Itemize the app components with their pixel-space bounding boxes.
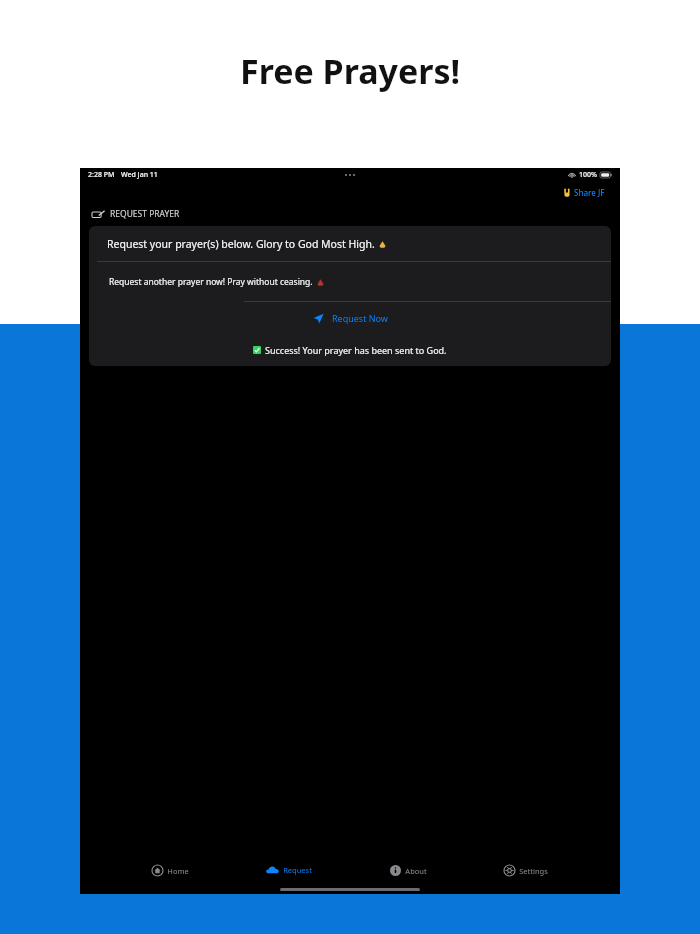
button[interactable]: Share JF [560,185,608,200]
button[interactable]: Settings [498,862,554,879]
staticText: Success! Your prayer has been sent to Go… [265,344,447,356]
button[interactable]: Home [146,862,195,879]
staticText: Request your prayer(s) below. Glory to G… [107,237,375,251]
staticText: Free Prayers! [240,48,461,94]
staticText: About [405,866,427,876]
staticText: 2:28 PM [88,170,115,180]
button[interactable]: About [384,862,433,879]
staticText: Request Now [332,312,388,324]
staticText: 100% [579,170,597,180]
staticText: Home [167,866,189,876]
button[interactable]: Request [260,862,318,878]
other: Send prayer request [313,313,324,324]
staticText: Wed Jan 11 [121,170,158,180]
staticText: Request another prayer now! Pray without… [109,276,313,288]
button[interactable]: Send prayer request [89,302,611,334]
button[interactable]: Request another prayer now! Pray without… [89,262,611,301]
button[interactable]: Request your prayer(s) below. Glory to G… [89,226,611,261]
staticText: Settings [519,866,548,876]
staticText: Request [283,865,312,875]
staticText: REQUEST PRAYER [110,208,180,220]
staticText: Share JF [574,187,605,198]
